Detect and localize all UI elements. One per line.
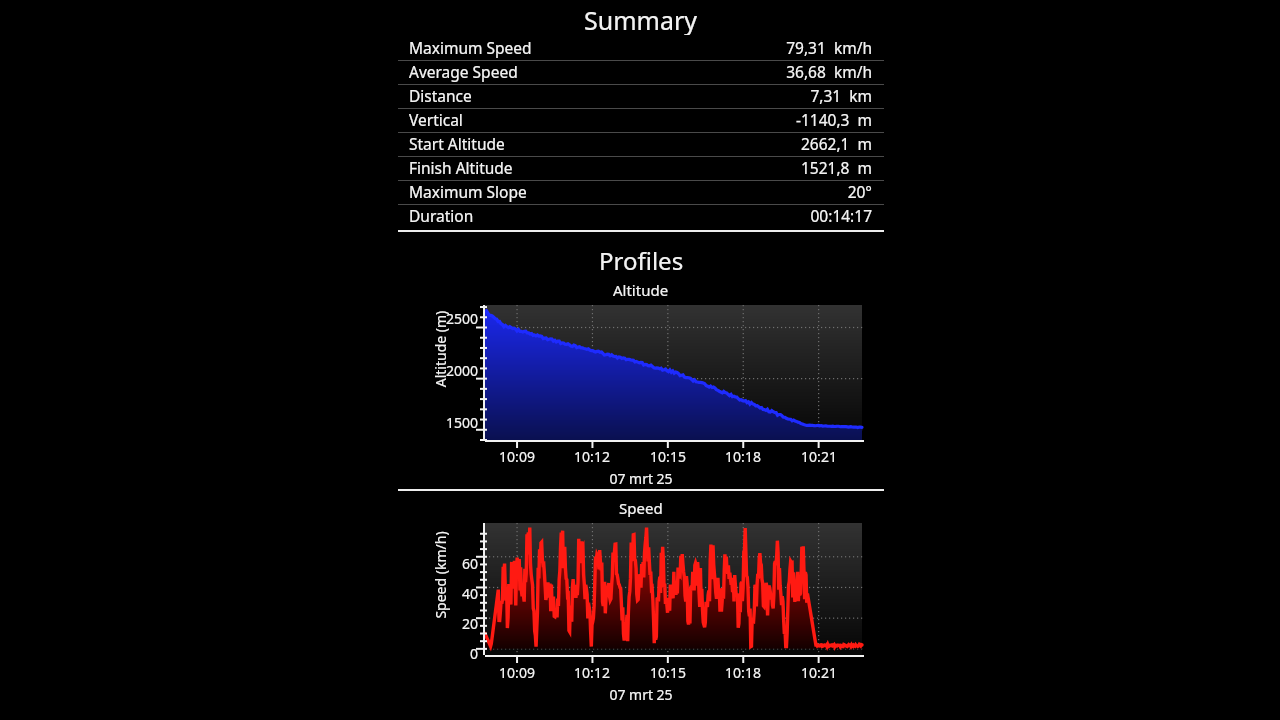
staticText: -1140,3 m	[795, 109, 872, 130]
staticText: 10:18	[718, 663, 768, 682]
staticText: 2500	[428, 309, 478, 328]
staticText: Maximum Speed	[409, 37, 786, 58]
staticText: 79,31 km/h	[786, 37, 872, 58]
staticText: 07 mrt 25	[398, 685, 884, 704]
button[interactable]: Maximum Slope	[398, 181, 884, 205]
staticText: Maximum Slope	[409, 181, 847, 202]
staticText: Finish Altitude	[409, 157, 800, 178]
button[interactable]: Altitude profile chart	[398, 299, 884, 489]
staticText: 10:21	[794, 663, 844, 682]
staticText: 10:18	[718, 447, 768, 466]
staticText: 10:12	[567, 447, 617, 466]
button[interactable]: Duration	[398, 205, 884, 229]
staticText: Duration	[409, 205, 810, 226]
staticText: Start Altitude	[409, 133, 800, 154]
staticText: 60	[444, 554, 478, 573]
staticText: 2662,1 m	[800, 133, 872, 154]
staticText: 0	[444, 644, 478, 663]
staticText: 20°	[847, 181, 872, 202]
staticText: 10:15	[643, 447, 693, 466]
staticText: 10:09	[492, 447, 542, 466]
staticText: Distance	[409, 85, 810, 106]
staticText: 36,68 km/h	[786, 61, 872, 82]
staticText: 1521,8 m	[800, 157, 872, 178]
staticText: 2000	[428, 361, 478, 380]
staticText: 10:12	[567, 663, 617, 682]
staticText: 1500	[428, 413, 478, 432]
staticText: 07 mrt 25	[398, 469, 884, 488]
staticText: Speed (km/h)	[431, 510, 450, 640]
button[interactable]: Distance	[398, 85, 884, 109]
staticText: 20	[444, 614, 478, 633]
button[interactable]: Start Altitude	[398, 133, 884, 157]
staticText: Speed	[619, 498, 663, 517]
staticText: 00:14:17	[810, 205, 872, 226]
staticText: 10:21	[794, 447, 844, 466]
staticText: 7,31 km	[810, 85, 872, 106]
staticText: Altitude	[613, 280, 669, 299]
button[interactable]: Speed profile chart	[398, 517, 884, 717]
staticText: Average Speed	[409, 61, 786, 82]
staticText: Profiles	[599, 244, 684, 274]
button[interactable]: Average Speed	[398, 61, 884, 85]
staticText: 40	[444, 584, 478, 603]
button[interactable]: Maximum Speed	[398, 37, 884, 61]
staticText: 10:15	[643, 663, 693, 682]
staticText: 10:09	[492, 663, 542, 682]
button[interactable]: Finish Altitude	[398, 157, 884, 181]
staticText: Altitude (m)	[431, 294, 450, 404]
staticText: Summary	[584, 3, 698, 35]
staticText: Vertical	[409, 109, 795, 130]
button[interactable]: Vertical	[398, 109, 884, 133]
